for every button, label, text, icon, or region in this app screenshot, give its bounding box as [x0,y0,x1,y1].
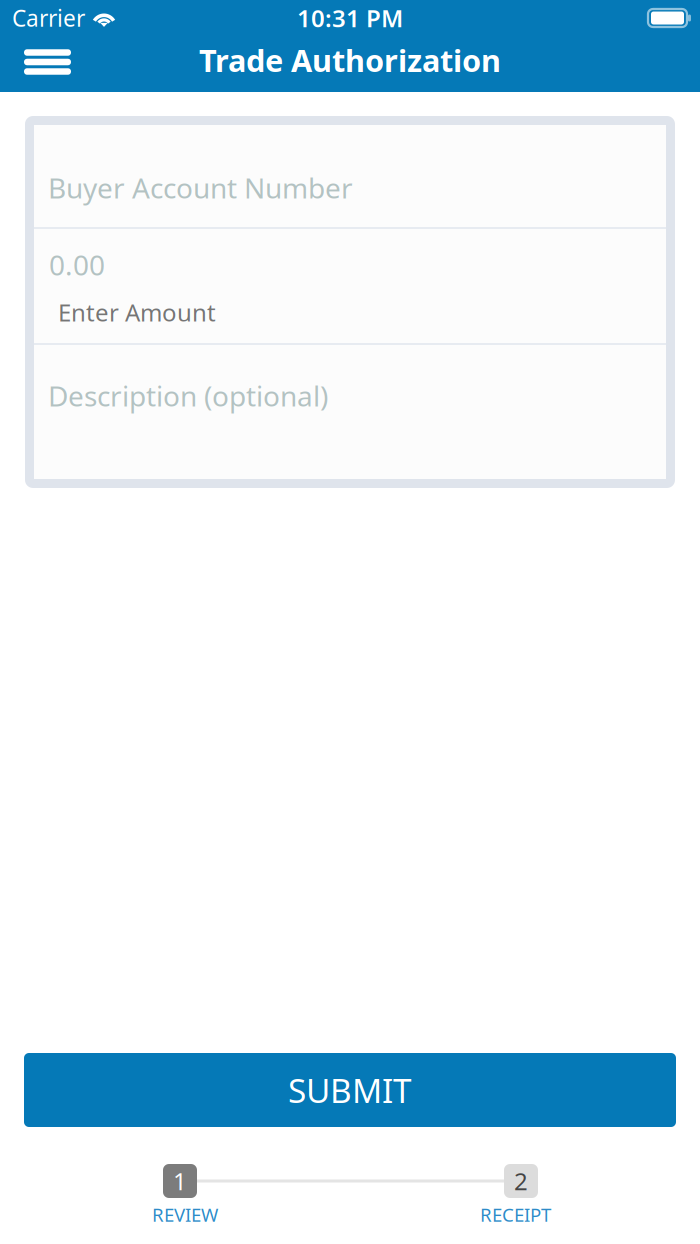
staticText: 0.00 [49,246,105,283]
staticText: Description (optional) [48,377,328,414]
button[interactable]: RECEIPT [480,1202,551,1227]
staticText: 10:31 PM [297,2,403,34]
button[interactable]: Step 1, Review [163,1164,197,1198]
button[interactable]: SUBMIT [24,1053,676,1127]
staticText: RECEIPT [480,1202,551,1227]
staticText: 1 [173,1165,187,1197]
staticText: REVIEW [152,1202,218,1227]
button[interactable]: Buyer Account Number [34,125,666,227]
button[interactable]: Step 2, Receipt [504,1164,538,1198]
staticText: SUBMIT [288,1068,412,1112]
staticText: Carrier [12,3,85,33]
staticText: Enter Amount [58,296,216,328]
staticText: 2 [514,1165,528,1197]
button[interactable]: Description (optional) [34,345,666,479]
button[interactable]: Menu [0,36,98,92]
staticText: Trade Authorization [199,40,501,80]
button[interactable]: 0.00 [34,229,666,343]
staticText: Buyer Account Number [48,169,353,206]
button[interactable]: REVIEW [152,1202,218,1227]
